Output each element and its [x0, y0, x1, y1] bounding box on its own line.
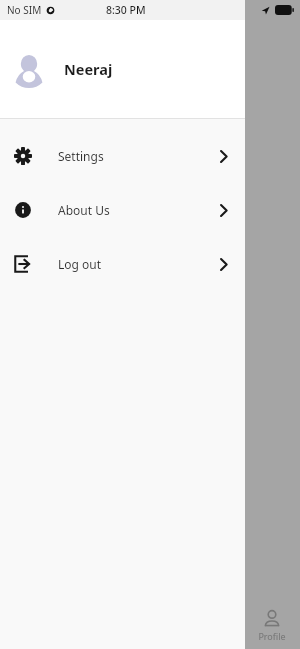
- staticText: Profile: [258, 630, 286, 642]
- staticText: Log out: [58, 256, 102, 272]
- button[interactable]: Log out: [0, 253, 245, 275]
- staticText: 8:30 PM: [106, 3, 146, 17]
- staticText: Neeraj: [64, 59, 113, 79]
- button[interactable]: Neeraj: [0, 20, 245, 118]
- staticText: No SIM: [7, 3, 42, 17]
- button[interactable]: [0, 0, 300, 649]
- staticText: About Us: [58, 202, 110, 218]
- staticText: Settings: [58, 148, 104, 164]
- button[interactable]: Settings: [0, 145, 245, 167]
- button[interactable]: Profile: [244, 601, 300, 649]
- button[interactable]: About Us: [0, 199, 245, 221]
